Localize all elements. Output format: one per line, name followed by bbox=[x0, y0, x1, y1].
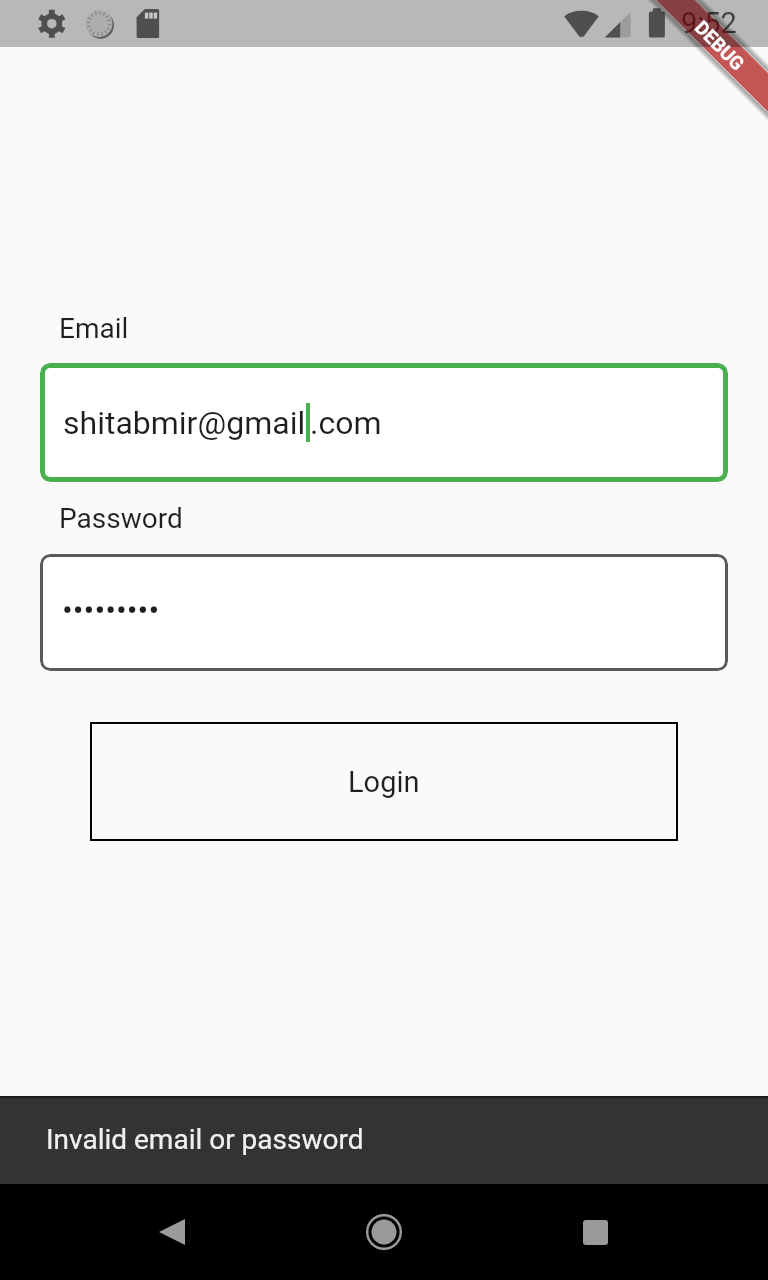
button[interactable]: Recent apps bbox=[547, 1184, 643, 1280]
staticText: .com bbox=[310, 404, 382, 442]
button[interactable]: Back bbox=[124, 1184, 220, 1280]
staticText: 9:52 bbox=[681, 6, 737, 40]
staticText: DEBUG bbox=[690, 16, 749, 75]
button[interactable]: Home bbox=[336, 1184, 432, 1280]
staticText: Login bbox=[348, 765, 420, 799]
staticText: Email bbox=[59, 312, 129, 345]
staticText: Invalid email or password bbox=[46, 1123, 364, 1156]
button[interactable]: ••••••••• bbox=[40, 554, 728, 671]
staticText: shitabmir@gmail bbox=[63, 404, 306, 442]
staticText: Password bbox=[59, 502, 183, 535]
button[interactable]: shitabmir@gmail bbox=[40, 363, 728, 482]
button[interactable]: Login bbox=[90, 722, 678, 841]
staticText: ••••••••• bbox=[62, 591, 160, 629]
